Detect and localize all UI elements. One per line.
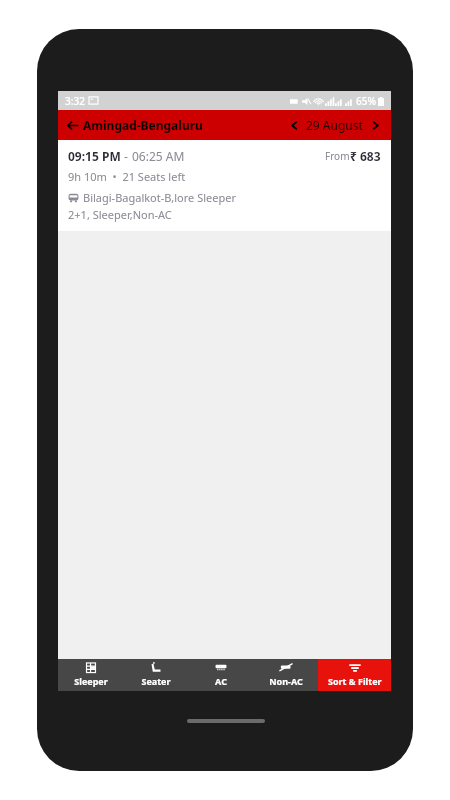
staticText: Bilagi-Bagalkot-B,lore Sleeper <box>83 190 236 205</box>
staticText: 3:32 <box>65 94 85 108</box>
button[interactable]: AC <box>188 659 253 691</box>
staticText: Non-AC <box>269 675 303 687</box>
button[interactable]: 09:15 PM <box>58 140 391 231</box>
staticText: 06:25 AM <box>132 148 185 164</box>
staticText: ₹ 683 <box>350 148 381 164</box>
staticText: AC <box>215 675 227 687</box>
button[interactable]: Previous day <box>287 118 301 132</box>
staticText: Amingad-Bengaluru <box>83 117 203 133</box>
staticText: - <box>121 148 132 164</box>
staticText: 9h 10m • 21 Seats left <box>68 169 186 184</box>
button[interactable]: Non-AC <box>253 659 318 691</box>
staticText: 09:15 PM <box>68 148 121 164</box>
button[interactable]: Seater <box>123 659 188 691</box>
staticText: From <box>325 149 350 163</box>
button[interactable]: Back <box>67 117 209 133</box>
button[interactable]: Sort & Filter <box>318 659 391 691</box>
staticText: Seater <box>141 675 171 687</box>
button[interactable]: Sleeper <box>58 659 123 691</box>
staticText: 2+1, Sleeper,Non-AC <box>68 207 172 222</box>
other: Back <box>67 120 78 131</box>
button[interactable]: 29 August <box>306 117 363 133</box>
staticText: 65% <box>356 94 376 108</box>
staticText: Sleeper <box>74 675 108 687</box>
staticText: Sort & Filter <box>328 675 382 687</box>
button[interactable]: Next day <box>368 118 382 132</box>
